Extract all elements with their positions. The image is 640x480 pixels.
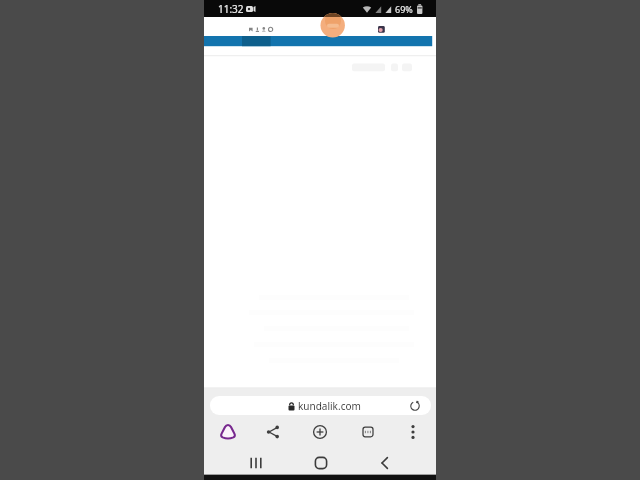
staticText: 11:32	[218, 2, 244, 16]
button[interactable]	[358, 422, 378, 442]
button[interactable]	[311, 453, 331, 473]
button[interactable]	[218, 422, 238, 442]
staticText: 69%	[395, 3, 413, 15]
button[interactable]: kundalik.com	[210, 396, 431, 415]
staticText: kundalik.com	[298, 399, 361, 413]
button[interactable]	[263, 422, 283, 442]
button[interactable]	[246, 453, 266, 473]
button[interactable]	[375, 453, 395, 473]
button[interactable]	[403, 422, 423, 442]
button[interactable]	[310, 422, 330, 442]
